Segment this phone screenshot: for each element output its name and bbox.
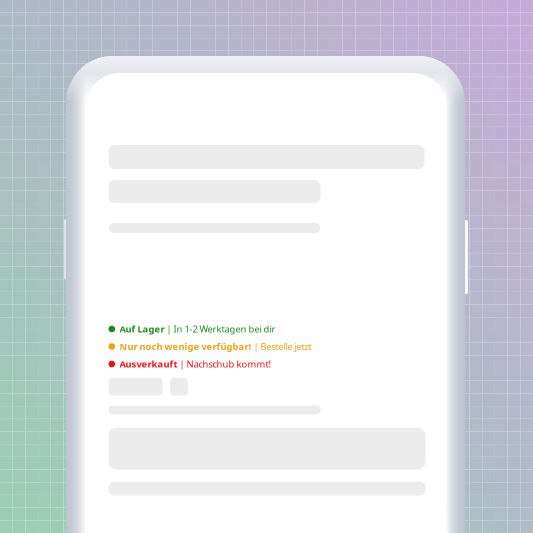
staticText: Ausverkauft | Nachschub kommt! bbox=[120, 358, 272, 370]
staticText: Nur noch wenige verfügbar! | Bestelle je… bbox=[120, 340, 312, 353]
staticText: Auf Lager | In 1-2 Werktagen bei dir bbox=[120, 323, 276, 335]
